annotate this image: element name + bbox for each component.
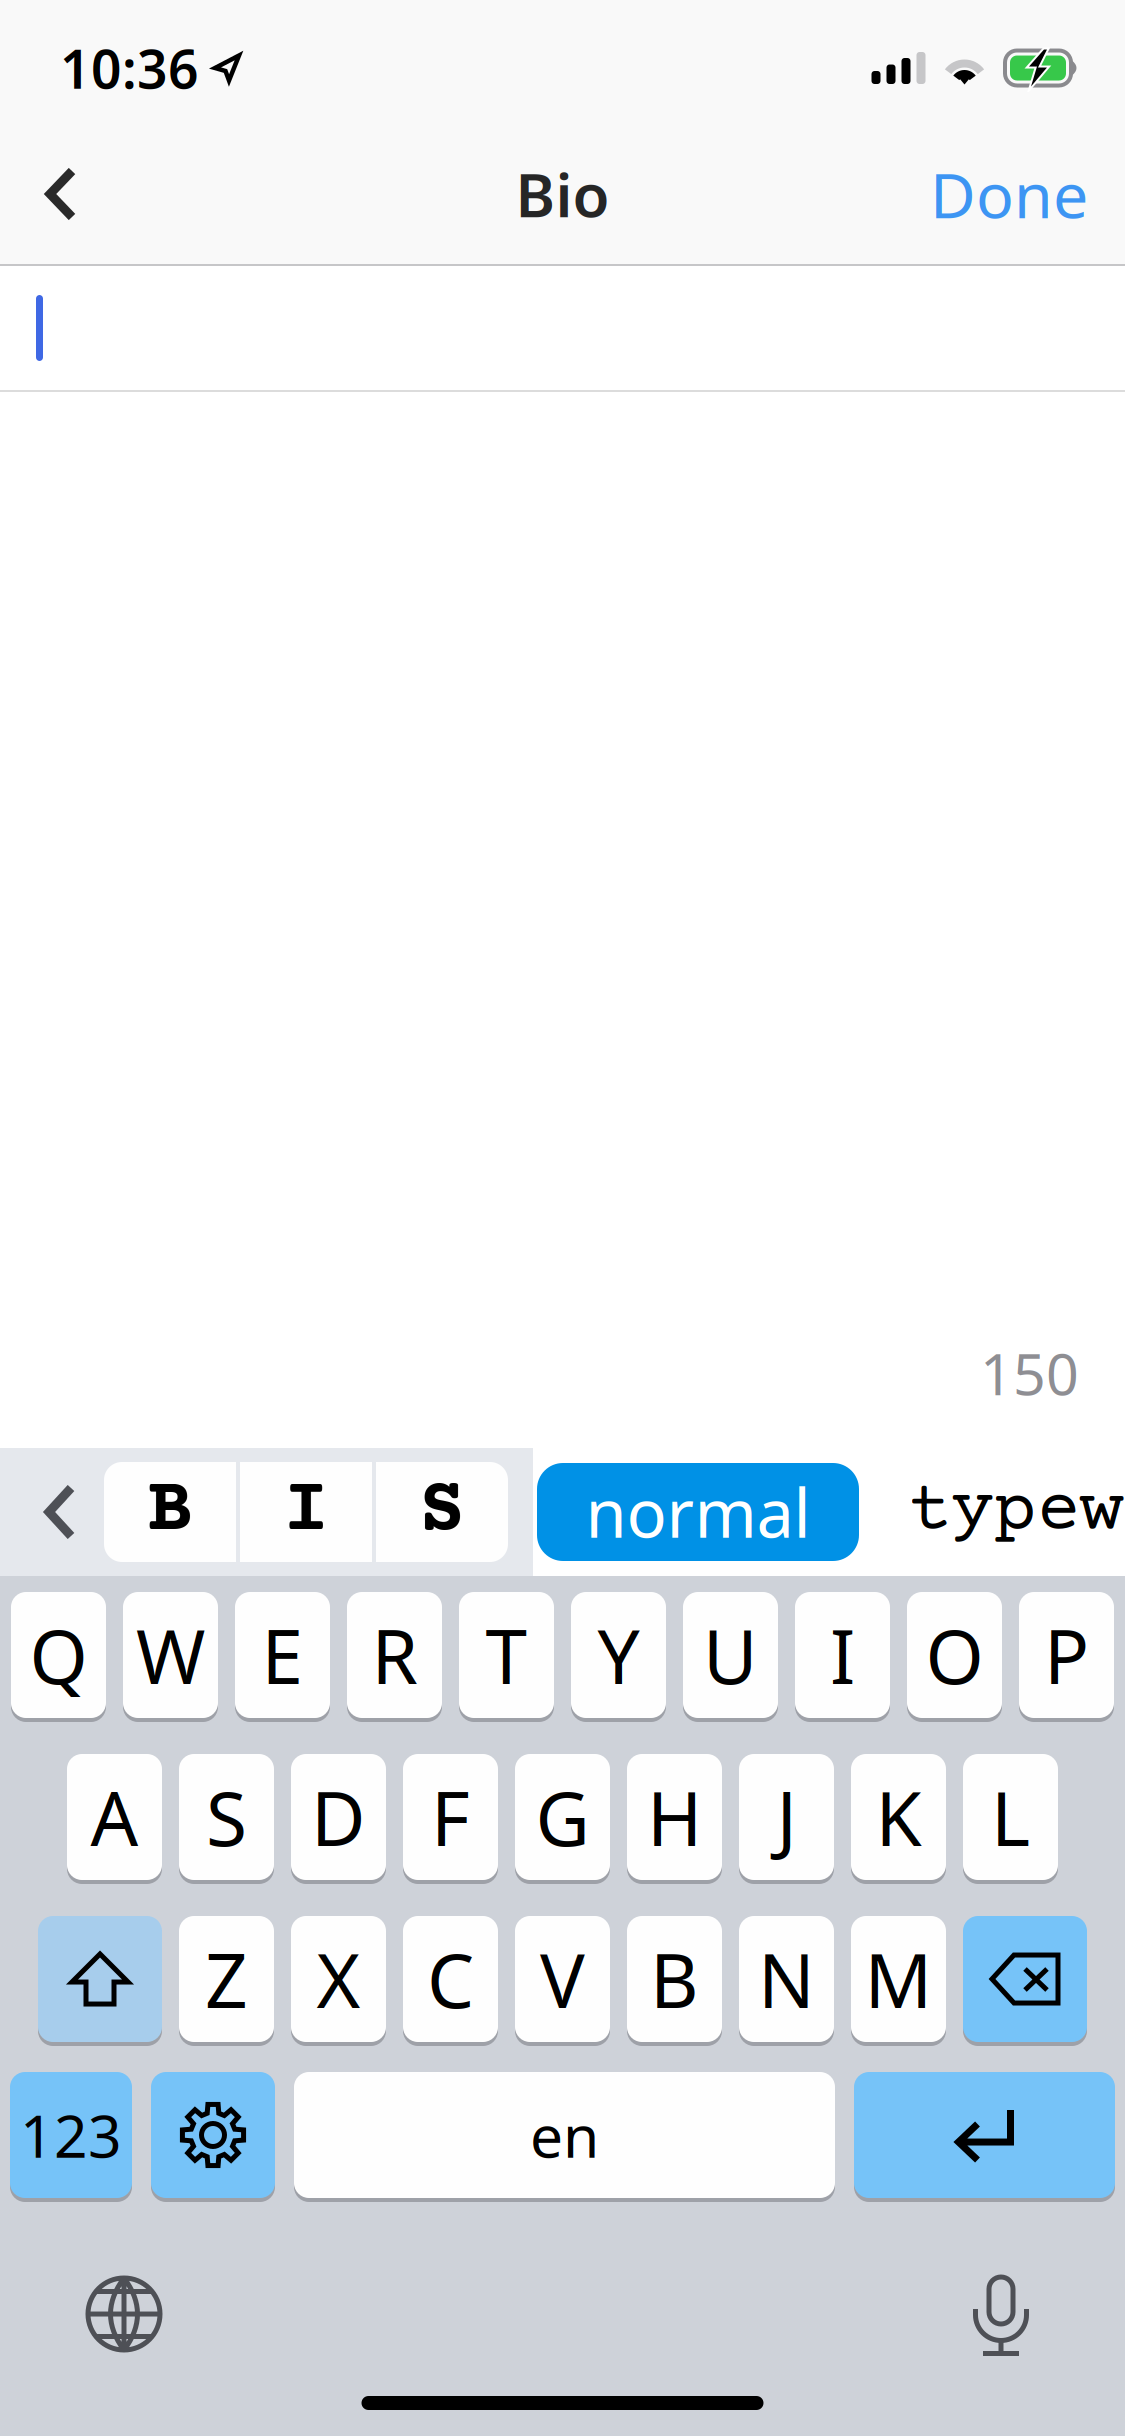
button[interactable]: K (851, 1754, 946, 1884)
button[interactable]: S (179, 1754, 274, 1884)
staticText: 123 (20, 2096, 122, 2174)
button[interactable]: L (963, 1754, 1058, 1884)
button[interactable]: Done (908, 118, 1110, 270)
button[interactable]: S (376, 1462, 508, 1562)
staticText: typewriter (908, 1472, 1125, 1552)
button[interactable]: E (235, 1592, 330, 1722)
button[interactable]: T (459, 1592, 554, 1722)
button[interactable]: Y (571, 1592, 666, 1722)
button[interactable]: O (907, 1592, 1002, 1722)
button[interactable]: 123 (10, 2072, 132, 2202)
staticText: I (283, 1469, 329, 1555)
staticText: R (371, 1605, 417, 1705)
button[interactable]: V (515, 1916, 610, 2046)
button[interactable]: Return (854, 2072, 1115, 2202)
staticText: U (703, 1605, 758, 1705)
button[interactable]: Keyboard settings (151, 2072, 275, 2202)
button[interactable]: normal (537, 1463, 859, 1561)
button[interactable]: typewriter (859, 1463, 1125, 1561)
staticText: G (535, 1767, 589, 1867)
staticText: Bio (515, 154, 609, 234)
button[interactable]: Next keyboard (69, 2259, 179, 2369)
staticText: J (776, 1767, 796, 1867)
staticText: L (991, 1767, 1030, 1867)
staticText: D (311, 1767, 366, 1867)
button[interactable]: Delete (963, 1916, 1087, 2046)
staticText: F (431, 1767, 470, 1867)
button[interactable]: J (739, 1754, 834, 1884)
button[interactable]: I (795, 1592, 890, 1722)
staticText: I (830, 1605, 855, 1705)
button[interactable]: G (515, 1754, 610, 1884)
staticText: B (147, 1469, 193, 1555)
staticText: X (316, 1929, 360, 2029)
staticText: M (864, 1929, 932, 2029)
button[interactable]: N (739, 1916, 834, 2046)
staticText: A (90, 1767, 138, 1867)
staticText: K (875, 1767, 921, 1867)
button[interactable]: C (403, 1916, 498, 2046)
button[interactable]: Q (11, 1592, 106, 1722)
button[interactable]: H (627, 1754, 722, 1884)
staticText: W (136, 1605, 205, 1705)
staticText: B (650, 1929, 699, 2029)
button[interactable]: Back (15, 130, 107, 258)
staticText: Y (597, 1605, 639, 1705)
button[interactable]: A (67, 1754, 162, 1884)
button[interactable]: X (291, 1916, 386, 2046)
staticText: T (485, 1605, 527, 1705)
staticText: E (261, 1605, 303, 1705)
staticText: S (419, 1469, 465, 1555)
staticText: 10:36 (60, 33, 199, 103)
button[interactable]: M (851, 1916, 946, 2046)
staticText: en (530, 2096, 599, 2174)
staticText: H (647, 1767, 702, 1867)
button[interactable]: R (347, 1592, 442, 1722)
staticText: Q (29, 1605, 87, 1705)
button[interactable]: I (240, 1462, 372, 1562)
button[interactable]: B (104, 1462, 236, 1562)
button[interactable]: F (403, 1754, 498, 1884)
button[interactable]: B (627, 1916, 722, 2046)
button[interactable]: Z (179, 1916, 274, 2046)
staticText: V (540, 1929, 585, 2029)
button[interactable]: Shift (38, 1916, 162, 2046)
staticText: C (427, 1929, 474, 2029)
staticText: Z (205, 1929, 248, 2029)
button[interactable]: D (291, 1754, 386, 1884)
button[interactable]: en (294, 2072, 835, 2202)
button[interactable]: Previous (16, 1448, 104, 1576)
staticText: N (758, 1929, 815, 2029)
button[interactable]: Dictation (946, 2259, 1056, 2369)
staticText: normal (585, 1468, 810, 1556)
button[interactable]: W (123, 1592, 218, 1722)
staticText: Done (930, 152, 1088, 236)
staticText: O (925, 1605, 983, 1705)
button[interactable]: P (1019, 1592, 1114, 1722)
staticText: S (206, 1767, 247, 1867)
staticText: 150 (980, 1335, 1079, 1411)
button[interactable]: U (683, 1592, 778, 1722)
staticText: P (1044, 1605, 1089, 1705)
